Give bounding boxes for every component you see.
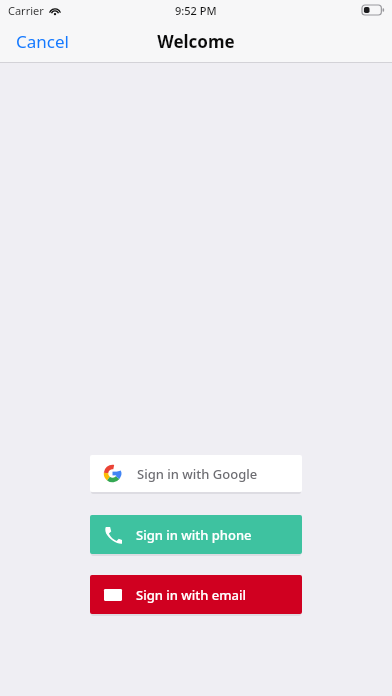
- staticText: Sign in with email: [136, 586, 247, 604]
- button[interactable]: Sign in with Google: [90, 455, 302, 492]
- staticText: 9:52 PM: [175, 3, 217, 18]
- staticText: Cancel: [16, 30, 69, 53]
- button[interactable]: Cancel: [10, 26, 75, 57]
- button[interactable]: Sign in with phone: [90, 515, 302, 554]
- staticText: Welcome: [157, 30, 235, 53]
- button[interactable]: Sign in with email: [90, 575, 302, 614]
- staticText: Sign in with phone: [136, 526, 252, 544]
- staticText: Sign in with Google: [137, 465, 258, 483]
- staticText: Carrier: [8, 3, 44, 18]
